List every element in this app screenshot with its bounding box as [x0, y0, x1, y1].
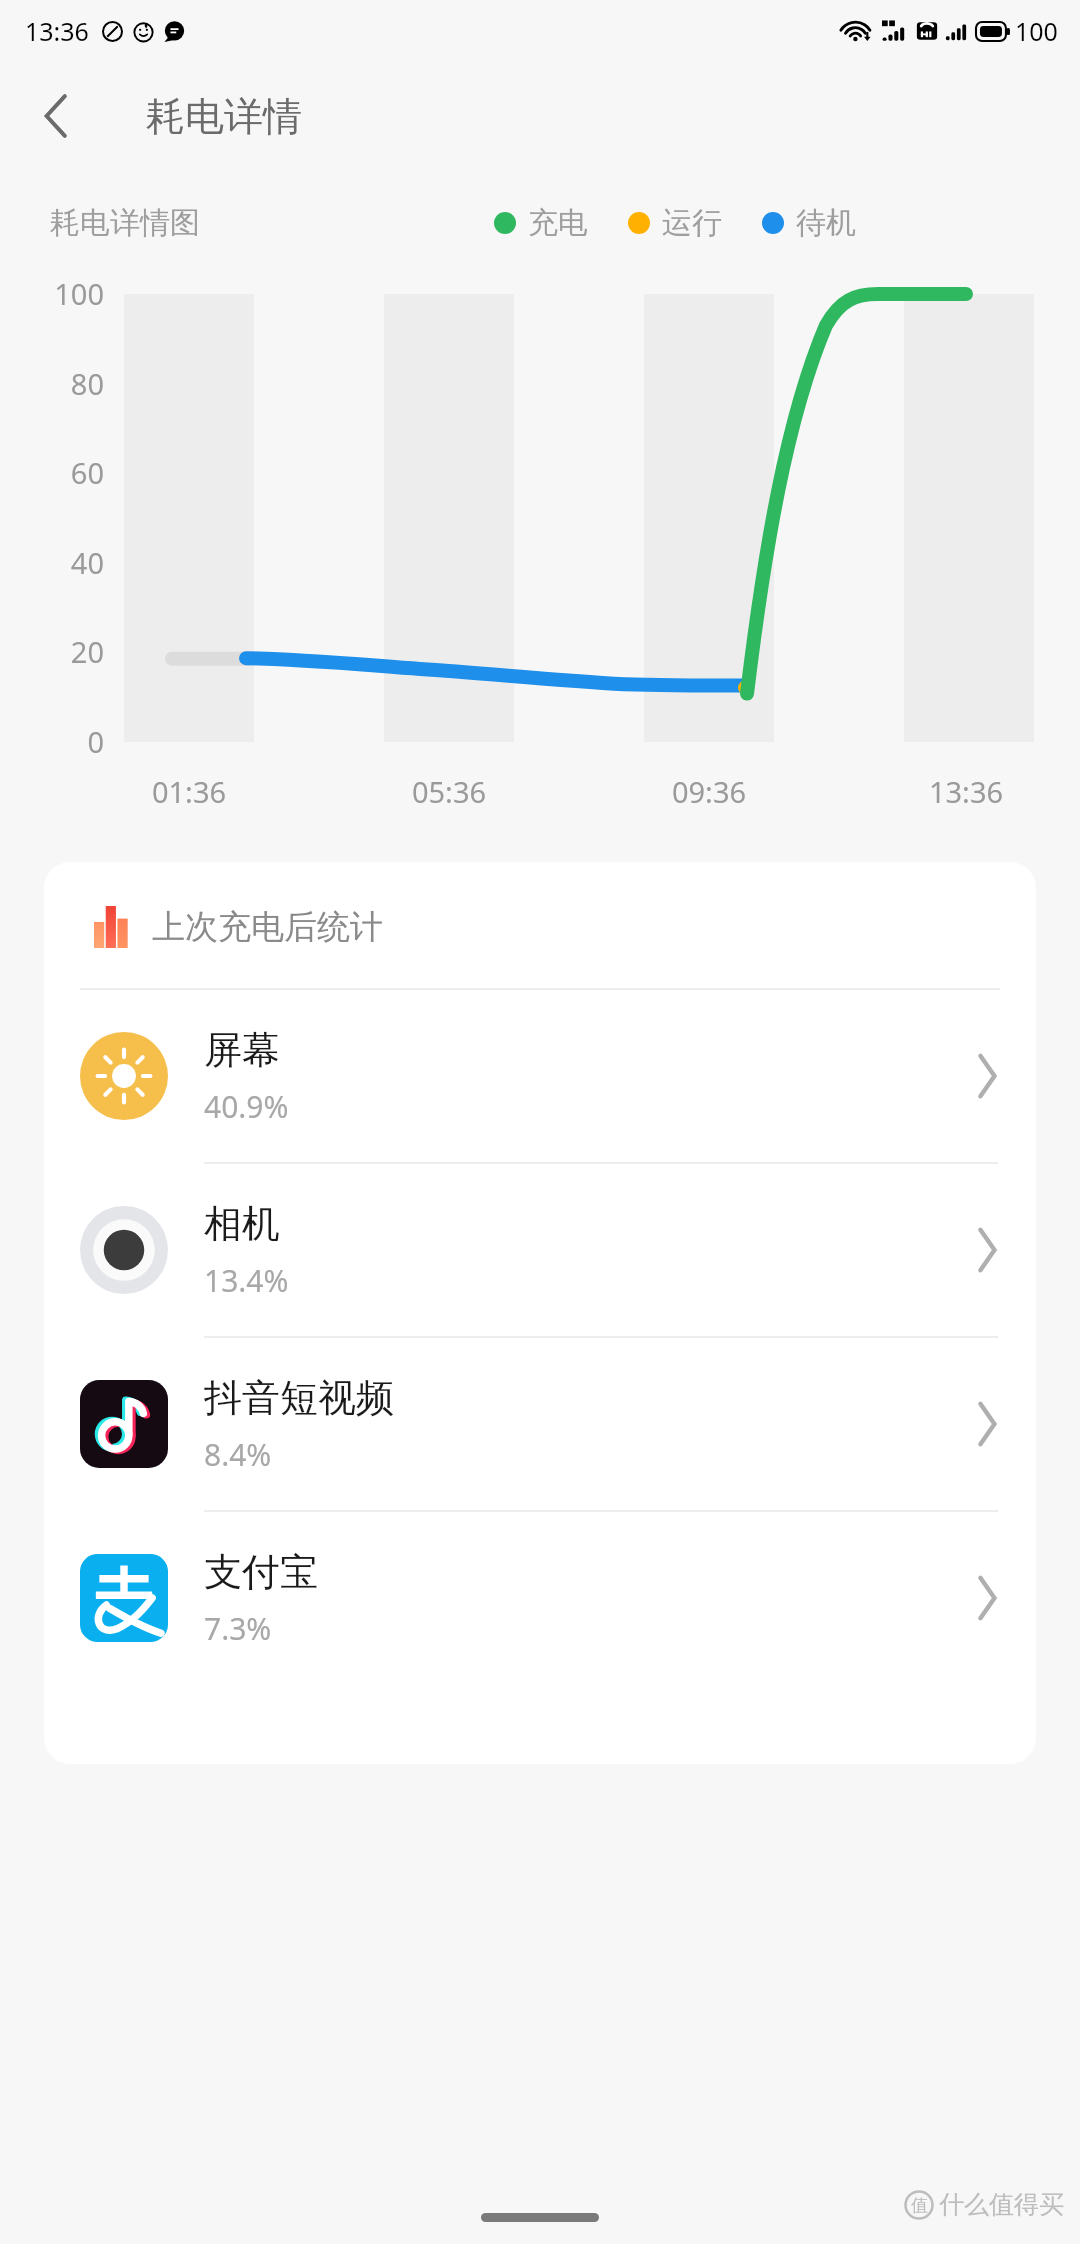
- button[interactable]: 相机: [44, 1164, 1036, 1338]
- staticText: 40.9%: [204, 1086, 289, 1127]
- staticText: 20: [32, 632, 104, 671]
- staticText: 13:36: [901, 772, 1031, 811]
- staticText: 什么值得买: [939, 2189, 1064, 2220]
- staticText: 屏幕: [204, 1026, 280, 1074]
- staticText: 13.4%: [204, 1260, 289, 1301]
- staticText: 上次充电后统计: [152, 906, 383, 948]
- staticText: 100: [1015, 14, 1058, 48]
- button[interactable]: 屏幕: [44, 990, 1036, 1164]
- staticText: 80: [32, 364, 104, 403]
- staticText: 8.4%: [204, 1434, 272, 1475]
- staticText: 01:36: [124, 772, 254, 811]
- staticText: 待机: [796, 204, 856, 242]
- button[interactable]: Back: [18, 78, 94, 154]
- staticText: 0: [32, 722, 104, 761]
- staticText: 13:36: [25, 14, 89, 48]
- staticText: 抖音短视频: [204, 1374, 394, 1422]
- staticText: 100: [32, 274, 104, 313]
- staticText: 7.3%: [204, 1608, 272, 1649]
- staticText: 运行: [662, 204, 722, 242]
- staticText: 值: [911, 2195, 928, 2216]
- staticText: 60: [32, 453, 104, 492]
- button[interactable]: 抖音短视频: [44, 1338, 1036, 1512]
- staticText: 40: [32, 543, 104, 582]
- button[interactable]: 支付宝: [44, 1512, 1036, 1684]
- staticText: 相机: [204, 1200, 280, 1248]
- staticText: 充电: [528, 204, 588, 242]
- staticText: 耗电详情: [146, 92, 302, 141]
- staticText: 05:36: [384, 772, 514, 811]
- staticText: 耗电详情图: [50, 204, 200, 242]
- staticText: 支付宝: [204, 1548, 318, 1596]
- staticText: 09:36: [644, 772, 774, 811]
